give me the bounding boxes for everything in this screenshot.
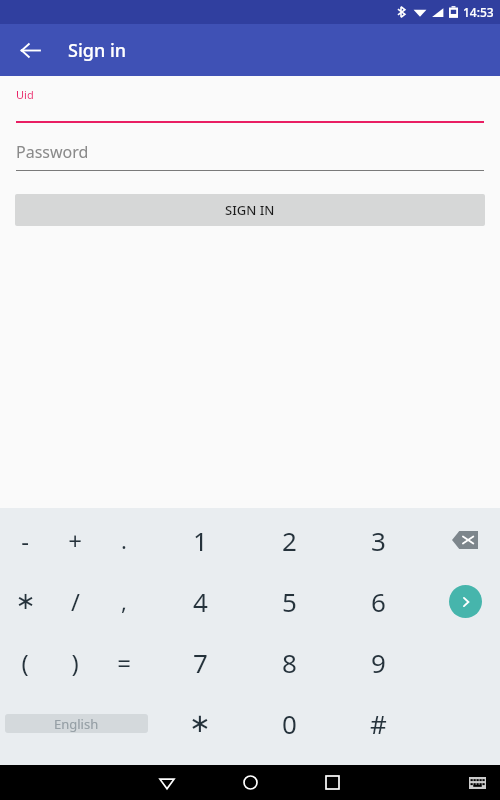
staticText: - — [21, 524, 29, 557]
staticText: 6 — [371, 584, 386, 619]
button[interactable]: 6 — [355, 573, 401, 629]
staticText: ) — [71, 646, 79, 679]
button[interactable]: - — [2, 512, 48, 568]
staticText: 5 — [282, 584, 297, 619]
staticText: 2 — [282, 523, 297, 558]
button[interactable]: 8 — [266, 634, 312, 690]
button[interactable]: Home — [230, 765, 270, 800]
button[interactable]: 5 — [266, 573, 312, 629]
button[interactable]: 0 — [266, 695, 312, 751]
button[interactable]: 3 — [355, 512, 401, 568]
staticText: English — [54, 715, 99, 733]
staticText: Sign in — [68, 38, 127, 63]
button[interactable]: Back — [147, 765, 187, 800]
staticText: # — [370, 706, 387, 741]
button[interactable]: = — [101, 634, 147, 690]
staticText: Password — [16, 141, 89, 163]
staticText: / — [71, 585, 80, 618]
staticText: , — [121, 586, 127, 616]
button[interactable]: 4 — [177, 573, 223, 629]
staticText: 3 — [371, 523, 386, 558]
staticText: Uid — [16, 87, 34, 102]
button[interactable]: / — [52, 573, 98, 629]
button[interactable]: ∗ — [177, 695, 223, 751]
staticText: SIGN IN — [225, 201, 275, 219]
button[interactable]: Recent apps — [312, 765, 352, 800]
button[interactable]: 2 — [266, 512, 312, 568]
staticText: 7 — [193, 645, 208, 680]
staticText: ∗ — [189, 708, 211, 738]
staticText: + — [68, 524, 82, 557]
button[interactable]: 9 — [355, 634, 401, 690]
button[interactable]: Password — [16, 141, 484, 171]
button[interactable]: 7 — [177, 634, 223, 690]
button[interactable]: 1 — [177, 512, 223, 568]
button[interactable]: English — [5, 714, 148, 733]
button[interactable]: , — [101, 573, 147, 629]
button[interactable]: Uid — [16, 87, 484, 123]
staticText: 9 — [371, 645, 386, 680]
staticText: ∗ — [15, 587, 36, 615]
staticText: 1 — [193, 523, 208, 558]
button[interactable]: ( — [2, 634, 48, 690]
staticText: 14:53 — [463, 4, 494, 20]
button[interactable]: SIGN IN — [15, 194, 485, 226]
staticText: . — [121, 525, 127, 555]
button[interactable]: Switch keyboard — [462, 768, 492, 798]
staticText: 4 — [193, 584, 208, 619]
staticText: 8 — [282, 645, 297, 680]
button[interactable]: ) — [52, 634, 98, 690]
button[interactable]: + — [52, 512, 98, 568]
staticText: ( — [21, 646, 29, 679]
button[interactable]: ∗ — [2, 573, 48, 629]
staticText: = — [117, 646, 131, 679]
button[interactable]: . — [101, 512, 147, 568]
button[interactable]: Enter — [443, 579, 487, 623]
button[interactable]: Back — [10, 30, 50, 70]
button[interactable]: # — [355, 695, 401, 751]
button[interactable]: Backspace — [443, 518, 487, 562]
staticText: 0 — [282, 706, 297, 741]
